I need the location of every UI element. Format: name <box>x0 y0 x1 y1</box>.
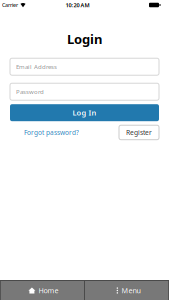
staticText: Password <box>16 88 44 96</box>
staticText: 10:20 AM <box>65 1 89 9</box>
button[interactable]: Log In <box>10 104 159 121</box>
staticText: Email Address <box>16 63 57 71</box>
staticText: Login <box>67 30 102 48</box>
button[interactable]: Forgot password? <box>24 128 79 137</box>
staticText: Register <box>126 128 152 137</box>
staticText: Log In <box>72 108 96 118</box>
staticText: Forgot password? <box>24 128 79 137</box>
button[interactable]: Register <box>119 125 159 140</box>
staticText: Home <box>38 286 58 295</box>
button[interactable]: Home <box>1 281 84 300</box>
staticText: Carrier <box>2 1 18 9</box>
button[interactable]: Menu <box>85 281 168 300</box>
staticText: Menu <box>122 286 141 295</box>
